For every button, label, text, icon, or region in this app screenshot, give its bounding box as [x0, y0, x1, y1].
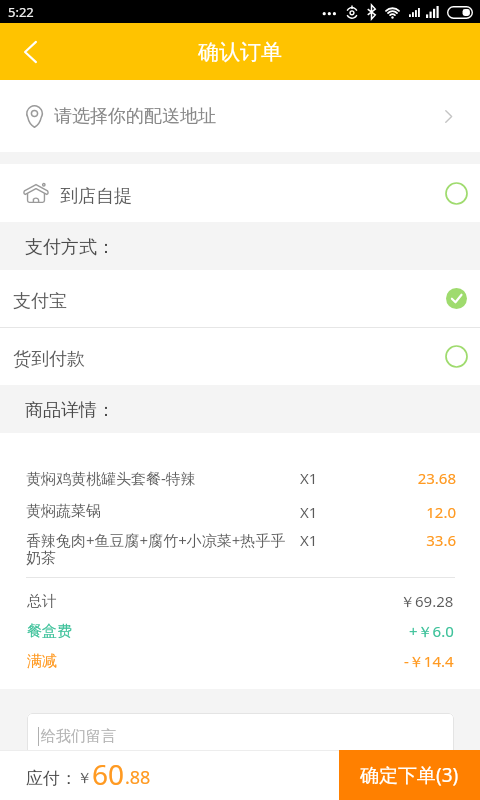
staticText: X1 [300, 530, 318, 550]
staticText: ￥ [77, 769, 92, 788]
staticText: ￥69.28 [400, 591, 454, 611]
staticText: 香辣兔肉+鱼豆腐+腐竹+小凉菜+热乎乎奶茶 [26, 530, 300, 567]
button[interactable]: 货到付款 [0, 328, 480, 385]
staticText: 商品详情： [25, 399, 115, 422]
staticText: 给我们留言 [41, 727, 116, 746]
staticText: .88 [125, 765, 151, 790]
staticText: 餐盒费 [27, 622, 72, 641]
staticText: 总计 [27, 592, 57, 611]
staticText: 到店自提 [60, 185, 132, 208]
staticText: 支付宝 [13, 290, 67, 313]
staticText: 支付方式： [25, 236, 115, 259]
staticText: -￥14.4 [404, 651, 454, 671]
staticText: 12.0 [360, 502, 456, 522]
staticText: X1 [300, 502, 318, 522]
staticText: 请选择你的配送地址 [54, 105, 216, 128]
staticText: 5:22 [8, 3, 34, 21]
staticText: 满减 [27, 652, 57, 671]
button[interactable]: 请选择你的配送地址 [0, 80, 480, 152]
button[interactable]: 确定下单(3) [339, 750, 480, 800]
staticText: 确认订单 [198, 39, 282, 65]
staticText: 33.6 [360, 530, 456, 550]
button[interactable]: 到店自提 [0, 164, 480, 222]
staticText: 确定下单(3) [360, 762, 459, 788]
staticText: 货到付款 [13, 348, 85, 371]
staticText: 黄焖鸡黄桃罐头套餐-特辣 [26, 468, 196, 488]
staticText: +￥6.0 [409, 621, 454, 641]
staticText: 60 [92, 755, 125, 793]
button[interactable]: 支付宝 [0, 270, 480, 327]
button[interactable]: Back [0, 23, 61, 80]
staticText: 23.68 [360, 468, 456, 488]
button[interactable]: 给我们留言 [27, 713, 454, 760]
staticText: 应付： [26, 768, 77, 789]
staticText: 黄焖蔬菜锅 [26, 502, 101, 521]
staticText: X1 [300, 468, 318, 488]
